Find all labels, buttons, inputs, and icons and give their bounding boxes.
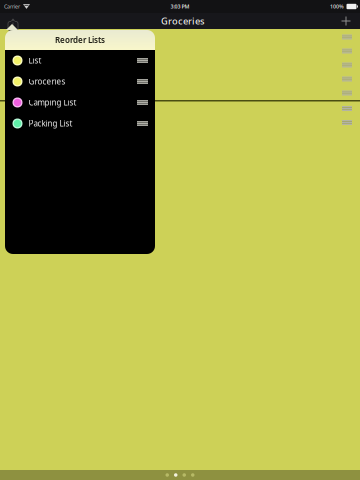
staticText: Camping List bbox=[28, 97, 76, 108]
button[interactable]: List bbox=[5, 50, 155, 71]
staticText: Groceries bbox=[28, 76, 65, 87]
button[interactable]: Groceries bbox=[5, 71, 155, 92]
button[interactable]: Reorder item bbox=[0, 101, 360, 115]
button[interactable]: Reorder item bbox=[0, 72, 360, 86]
button[interactable]: Packing List bbox=[5, 113, 155, 134]
button[interactable]: Camping List bbox=[5, 92, 155, 113]
staticText: Carrier bbox=[4, 3, 20, 10]
staticText: Reorder Lists bbox=[55, 35, 105, 45]
staticText: Groceries bbox=[161, 15, 205, 27]
button[interactable]: Share bbox=[0, 13, 26, 29]
button[interactable]: Reorder item bbox=[0, 86, 360, 100]
button[interactable]: Reorder item bbox=[0, 115, 360, 129]
button[interactable]: Reorder item bbox=[0, 30, 360, 44]
button[interactable]: Reorder item bbox=[0, 44, 360, 58]
staticText: 100% bbox=[330, 3, 344, 10]
staticText: Packing List bbox=[28, 118, 72, 129]
staticText: 3:03 PM bbox=[170, 3, 189, 10]
staticText: List bbox=[28, 55, 41, 66]
button[interactable]: Reorder item bbox=[0, 58, 360, 72]
button[interactable]: Add item bbox=[336, 13, 356, 29]
